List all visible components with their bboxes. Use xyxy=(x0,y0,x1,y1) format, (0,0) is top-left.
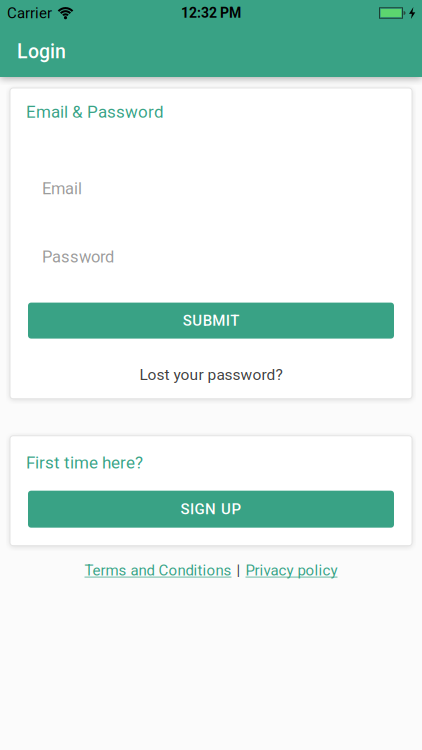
button[interactable]: SIGN UP xyxy=(28,491,394,528)
button[interactable]: Terms and Conditions xyxy=(84,562,231,579)
staticText: Terms and Conditions xyxy=(84,562,231,579)
button[interactable]: SUBMIT xyxy=(28,303,394,339)
staticText: SUBMIT xyxy=(183,312,239,329)
staticText: First time here? xyxy=(26,453,143,473)
staticText: Carrier xyxy=(7,4,52,22)
button[interactable]: Lost your password? xyxy=(10,366,412,384)
staticText: Email & Password xyxy=(26,102,164,122)
button[interactable]: Password xyxy=(10,247,412,267)
staticText: | xyxy=(236,562,240,579)
staticText: Password xyxy=(42,247,114,267)
button[interactable]: Privacy policy xyxy=(245,562,337,579)
staticText: Email xyxy=(42,179,82,198)
staticText: Privacy policy xyxy=(245,562,337,579)
button[interactable]: Email xyxy=(10,179,412,198)
staticText: SIGN UP xyxy=(180,500,241,518)
staticText: Login xyxy=(17,40,66,63)
staticText: 12:32 PM xyxy=(181,5,241,21)
staticText: Lost your password? xyxy=(139,366,282,384)
